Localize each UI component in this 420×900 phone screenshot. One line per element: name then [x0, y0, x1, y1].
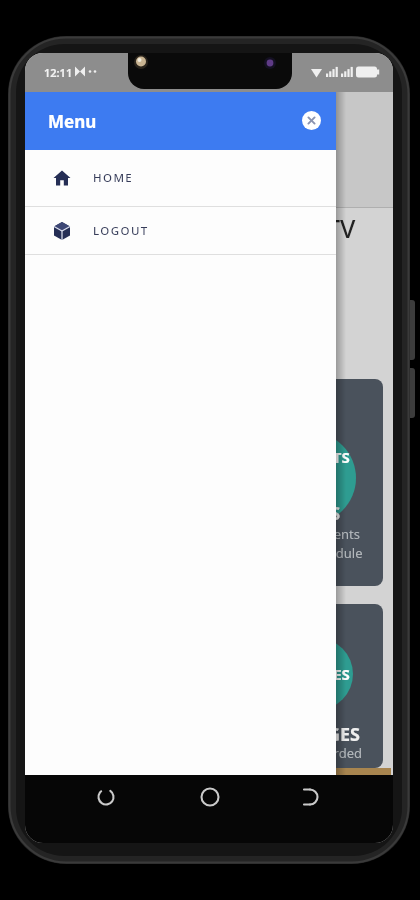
staticText: PACKAGES: [269, 722, 361, 747]
staticText: PACKAGES: [274, 664, 350, 684]
button[interactable]: HOME: [25, 150, 336, 206]
staticText: Menu: [48, 110, 97, 133]
staticText: LOGOUT: [93, 223, 149, 239]
staticText: upcoming events: [255, 525, 361, 543]
staticText: EVENTS: [294, 447, 350, 467]
staticText: schedule: [308, 544, 363, 562]
staticText: 12:11: [44, 65, 73, 80]
button[interactable]: LOGOUT: [25, 207, 336, 254]
staticText: recorded: [307, 744, 362, 762]
staticText: TV: [326, 211, 356, 245]
staticText: EVENTS: [277, 502, 341, 525]
staticText: HOME: [93, 170, 134, 186]
button[interactable]: [302, 111, 321, 130]
